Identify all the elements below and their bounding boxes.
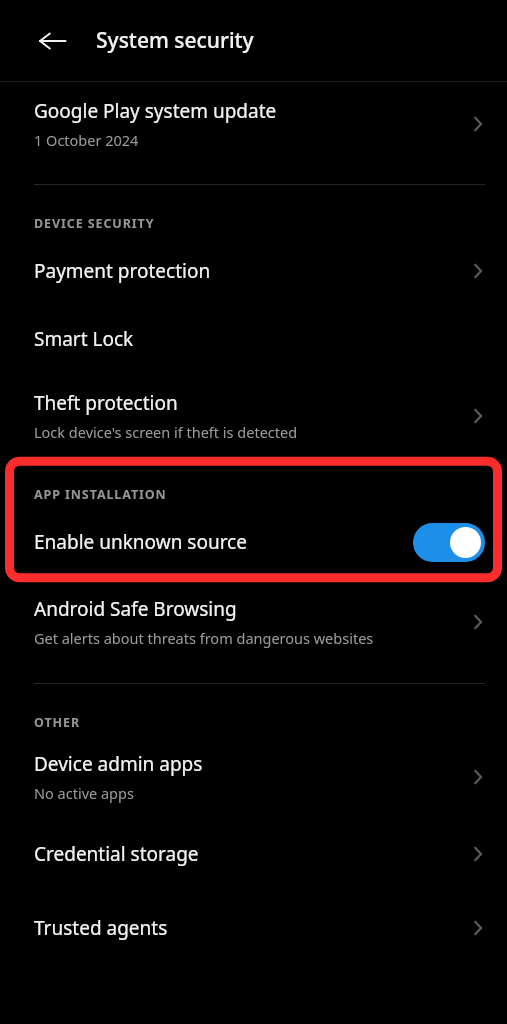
staticText: Payment protection: [34, 258, 211, 284]
button[interactable]: Enable unknown source toggle: [413, 523, 485, 562]
button[interactable]: Enable unknown source: [0, 509, 507, 575]
staticText: Credential storage: [34, 841, 199, 867]
button[interactable]: Smart Lock: [0, 302, 507, 376]
button[interactable]: Payment protection: [0, 240, 507, 302]
staticText: Enable unknown source: [34, 529, 413, 555]
staticText: Get alerts about threats from dangerous …: [34, 628, 374, 648]
staticText: DEVICE SECURITY: [34, 215, 155, 232]
button[interactable]: Device admin apps: [0, 739, 507, 815]
button[interactable]: Theft protection: [0, 376, 507, 456]
staticText: OTHER: [34, 714, 80, 731]
staticText: Theft protection: [34, 390, 178, 416]
button[interactable]: Trusted agents: [0, 893, 507, 963]
staticText: APP INSTALLATION: [34, 486, 167, 503]
staticText: System security: [96, 26, 254, 55]
button[interactable]: Credential storage: [0, 815, 507, 893]
staticText: No active apps: [34, 783, 134, 803]
button[interactable]: Android Safe Browsing: [0, 583, 507, 661]
staticText: Trusted agents: [34, 915, 168, 941]
staticText: Lock device's screen if theft is detecte…: [34, 422, 298, 442]
staticText: Smart Lock: [34, 326, 134, 352]
button[interactable]: Back: [30, 19, 74, 63]
staticText: Device admin apps: [34, 751, 203, 777]
staticText: 1 October 2024: [34, 130, 139, 150]
button[interactable]: Google Play system update: [0, 82, 507, 166]
staticText: Google Play system update: [34, 98, 277, 124]
staticText: Android Safe Browsing: [34, 596, 237, 622]
